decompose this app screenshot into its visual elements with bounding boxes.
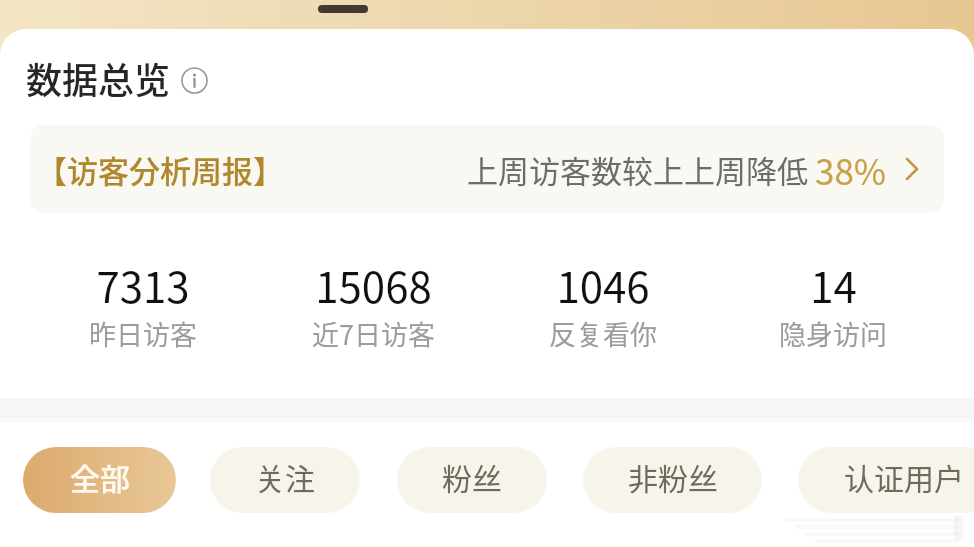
staticText: 关注	[255, 455, 315, 498]
staticText: 隐身访问	[779, 314, 887, 353]
staticText: 全部	[70, 455, 130, 498]
staticText: 非粉丝	[628, 455, 718, 498]
staticText: 反复看你	[549, 314, 657, 353]
button[interactable]: 认证用户	[798, 447, 974, 513]
button[interactable]: Info	[181, 67, 208, 94]
button[interactable]: 15068	[258, 254, 488, 354]
staticText: 认证用户	[844, 455, 964, 498]
staticText: 上周访客数较上上周降低	[467, 147, 815, 192]
button[interactable]: 【访客分析周报】	[30, 125, 944, 213]
staticText: 38%	[815, 144, 887, 195]
staticText: 数据总览	[26, 52, 171, 104]
button[interactable]: 14	[718, 254, 948, 354]
staticText: 昨日访客	[89, 314, 197, 353]
button[interactable]: 7313	[28, 254, 258, 354]
staticText: 近7日访客	[312, 314, 435, 353]
button[interactable]: 关注	[210, 447, 360, 513]
button[interactable]: 非粉丝	[583, 447, 762, 513]
staticText: 7313	[96, 254, 190, 315]
staticText: 1046	[556, 254, 650, 315]
staticText: 粉丝	[442, 455, 502, 498]
button[interactable]: 1046	[488, 254, 718, 354]
button[interactable]: 粉丝	[397, 447, 547, 513]
staticText: 14	[810, 254, 857, 315]
staticText: 15068	[315, 254, 432, 315]
staticText: 【访客分析周报】	[36, 147, 284, 192]
button[interactable]: 全部	[23, 447, 176, 513]
